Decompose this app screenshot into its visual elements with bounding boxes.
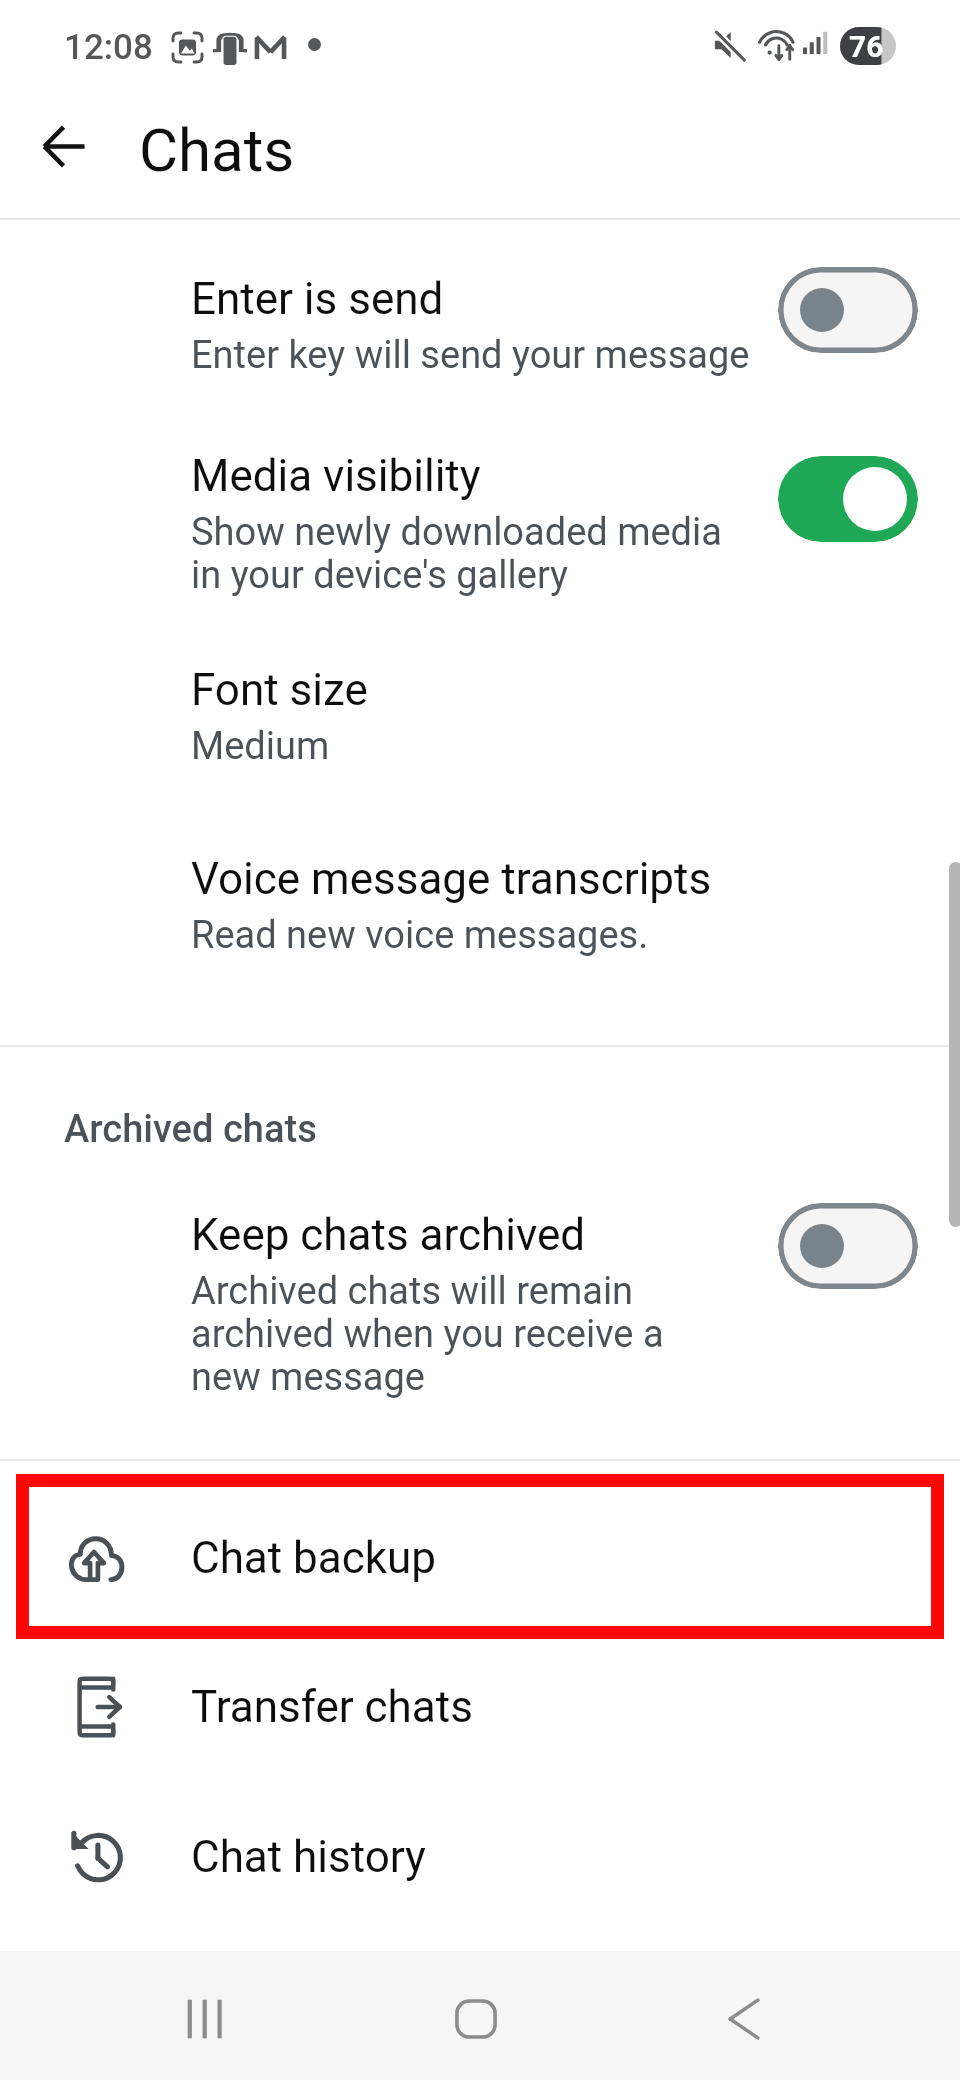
button[interactable]: Enter is send [0,244,960,396]
button[interactable]: Font size [0,634,960,794]
staticText: Media visibility [191,450,481,502]
staticText: Voice message transcripts [191,853,712,905]
button[interactable]: Enter is send [778,267,918,353]
staticText: Read new voice messages. [191,913,649,958]
staticText: Archived chats will remain archived when… [191,1269,664,1399]
button[interactable]: Keep chats archived [778,1203,918,1289]
button[interactable]: Transfer chats [0,1632,960,1782]
staticText: Show newly downloaded media in your devi… [191,510,722,597]
staticText: Chat history [191,1831,426,1883]
button[interactable]: Home [416,1959,536,2079]
staticText: Font size [191,664,368,716]
staticText: Transfer chats [191,1681,473,1733]
staticText: Chat backup [191,1532,437,1584]
button[interactable]: Keep chats archived [0,1179,960,1424]
button[interactable]: Back [684,1959,804,2079]
button[interactable]: Chat backup [0,1483,960,1633]
staticText: Keep chats archived [191,1209,586,1261]
staticText: 12:08 [64,27,153,68]
staticText: Enter is send [191,273,444,325]
button[interactable]: Voice message transcripts [0,823,960,993]
staticText: Archived chats [64,1107,317,1152]
button[interactable]: Back [19,102,107,190]
staticText: Enter key will send your message [191,333,750,378]
button[interactable]: Chat history [0,1782,960,1932]
staticText: 76 [849,29,884,64]
staticText: Medium [191,724,330,769]
button[interactable]: Media visibility [778,456,918,542]
button[interactable]: Media visibility [0,420,960,620]
staticText: Chats [139,115,295,185]
button[interactable]: Recent apps [147,1959,267,2079]
